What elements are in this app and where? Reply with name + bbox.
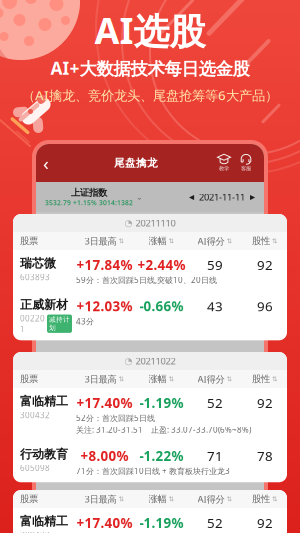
staticText: ⇅ xyxy=(272,375,278,383)
staticText: 2021-11-11 xyxy=(199,191,245,203)
staticText: 43 xyxy=(207,297,223,315)
staticText: 603893 xyxy=(20,272,50,282)
staticText: ▶ xyxy=(250,193,255,201)
button[interactable]: 股性 xyxy=(240,373,290,385)
staticText: 富临精工 xyxy=(20,514,68,529)
staticText: 96 xyxy=(257,297,273,315)
staticText: 减持计划 xyxy=(49,315,70,332)
staticText: 客服 xyxy=(241,165,251,172)
button[interactable]: 上证指数 xyxy=(45,187,143,207)
staticText: ⇅ xyxy=(272,495,278,503)
button[interactable]: 富临精工 xyxy=(13,508,287,533)
button[interactable]: 瑞芯微 xyxy=(13,250,287,291)
button[interactable]: AI得分 xyxy=(190,235,240,247)
staticText: 52 xyxy=(207,394,223,412)
staticText: 20211110 xyxy=(135,217,175,229)
staticText: ⇅ xyxy=(226,495,232,503)
staticText: ⇅ xyxy=(118,495,124,503)
staticText: 股票 xyxy=(20,235,38,247)
staticText: 行动教育 xyxy=(20,447,68,462)
staticText: 股性 xyxy=(252,493,270,505)
button[interactable]: 教学 xyxy=(213,152,235,174)
button[interactable]: AI得分 xyxy=(190,373,240,385)
button[interactable]: 股性 xyxy=(240,493,290,505)
staticText: 52分：首次回踩5日线 xyxy=(76,413,155,423)
staticText: AI得分 xyxy=(197,373,224,385)
staticText: 股性 xyxy=(252,235,270,247)
button[interactable]: 股性 xyxy=(240,235,290,247)
button[interactable]: AI得分 xyxy=(190,493,240,505)
staticText: 正威新材 xyxy=(20,297,68,312)
staticText: ⇅ xyxy=(226,375,232,383)
staticText: 92 xyxy=(257,394,273,412)
button[interactable]: 3日最高 xyxy=(76,373,133,385)
button[interactable]: 3日最高 xyxy=(76,493,133,505)
staticText: 关注: 31.20-31.51 止盈: 33.07-33.70(6%~8%) xyxy=(76,424,251,435)
staticText: ⇅ xyxy=(118,375,124,383)
staticText: -0.66% xyxy=(139,297,183,315)
button[interactable]: 返回 xyxy=(43,151,59,175)
staticText: +17.40% xyxy=(76,514,132,532)
staticText: 3日最高 xyxy=(84,493,116,505)
staticText: +2.44% xyxy=(137,256,185,274)
staticText: AI选股 xyxy=(94,6,205,54)
button[interactable]: 客服 xyxy=(235,152,257,174)
staticText: 股票 xyxy=(20,493,38,505)
staticText: ⇅ xyxy=(118,237,124,245)
staticText: 3日最高 xyxy=(84,373,116,385)
staticText: 3532.79 +1.15% 3014:1382 xyxy=(45,198,133,207)
staticText: AI得分 xyxy=(197,235,224,247)
button[interactable]: 3日最高 xyxy=(76,235,133,247)
staticText: +17.84% xyxy=(76,256,132,274)
staticText: 富临精工 xyxy=(20,394,68,409)
staticText: 43分 xyxy=(76,316,94,327)
button[interactable]: 涨幅 xyxy=(133,373,190,385)
staticText: -1.22% xyxy=(139,447,183,465)
staticText: 涨幅 xyxy=(148,373,166,385)
staticText: 3日最高 xyxy=(84,235,116,247)
staticText: 涨幅 xyxy=(148,235,166,247)
staticText: 20211022 xyxy=(135,355,175,367)
staticText: ‹ xyxy=(43,151,49,175)
staticText: ◔ xyxy=(124,356,132,366)
staticText: 教学 xyxy=(219,165,229,172)
staticText: +17.40% xyxy=(76,394,132,412)
button[interactable]: 正威新材 xyxy=(13,291,287,340)
staticText: ◀ xyxy=(189,193,194,201)
staticText: ⇅ xyxy=(168,375,174,383)
button[interactable]: 涨幅 xyxy=(133,493,190,505)
staticText: ⇅ xyxy=(168,495,174,503)
staticText: 300432 xyxy=(20,530,50,533)
staticText: 股性 xyxy=(252,373,270,385)
staticText: 71分：首次回踩10日线 + 教育板块行业龙3 xyxy=(76,466,230,476)
staticText: 92 xyxy=(257,256,273,274)
staticText: AI+大数据技术每日选金股 xyxy=(50,56,249,79)
staticText: 52 xyxy=(207,514,223,532)
staticText: ◔ xyxy=(124,218,132,228)
staticText: 605098 xyxy=(20,463,50,473)
staticText: 71 xyxy=(207,447,223,465)
staticText: +12.03% xyxy=(76,297,132,315)
button[interactable]: 行动教育 xyxy=(13,441,287,482)
staticText: -1.19% xyxy=(139,394,183,412)
staticText: 300432 xyxy=(20,410,50,420)
staticText: 59 xyxy=(207,256,223,274)
staticText: 股票 xyxy=(20,373,38,385)
staticText: 78 xyxy=(257,447,273,465)
staticText: 涨幅 xyxy=(148,493,166,505)
button[interactable]: 富临精工 xyxy=(13,388,287,441)
staticText: 上证指数 xyxy=(71,187,107,198)
staticText: ⌄ xyxy=(136,192,143,202)
staticText: ⇅ xyxy=(272,237,278,245)
staticText: 瑞芯微 xyxy=(20,256,56,271)
button[interactable]: 涨幅 xyxy=(133,235,190,247)
staticText: ⇅ xyxy=(226,237,232,245)
staticText: （AI擒龙、竞价龙头、尾盘抢筹等6大产品） xyxy=(22,86,278,104)
staticText: 92 xyxy=(257,514,273,532)
button[interactable]: 日期选择 xyxy=(189,191,255,203)
staticText: -1.19% xyxy=(139,514,183,532)
staticText: AI得分 xyxy=(197,493,224,505)
